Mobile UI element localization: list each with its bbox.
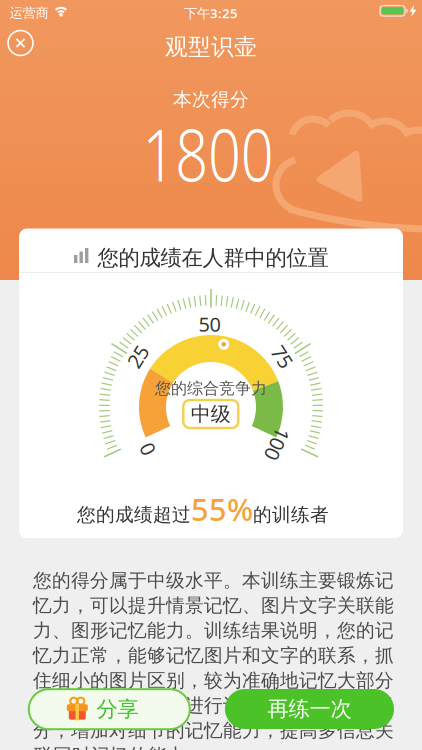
staticText: 您的成绩在人群中的位置 bbox=[97, 245, 328, 271]
staticText: 分享 bbox=[96, 696, 138, 722]
staticText: 您的综合竞争力 bbox=[155, 379, 267, 398]
staticText: 力、图形记忆能力。训练结果说明，您的记 bbox=[33, 619, 394, 642]
staticText: 住细小的图片区别，较为准确地记忆大部分 bbox=[33, 669, 394, 692]
staticText: 1800 bbox=[126, 106, 290, 201]
staticText: 您的成绩超过 bbox=[77, 503, 191, 526]
staticText: 再练一次 bbox=[267, 696, 351, 722]
staticText: 25 bbox=[127, 343, 149, 370]
staticText: 分，增加对细节的记忆能力，提高多信息关 bbox=[33, 719, 394, 742]
staticText: 观型识壶 bbox=[165, 33, 257, 61]
staticText: 75 bbox=[271, 343, 293, 370]
staticText: 联同时记忆的能力。 bbox=[34, 744, 205, 750]
staticText: 您的得分属于中级水平。本训练主要锻炼记 bbox=[33, 569, 394, 592]
staticText: 的训练者 bbox=[253, 503, 329, 526]
staticText: 忆力，可以提升情景记忆、图片文字关联能 bbox=[33, 594, 394, 617]
staticText: 55% bbox=[191, 489, 253, 529]
staticText: 本次得分 bbox=[173, 88, 249, 111]
staticText: 运营商 bbox=[9, 5, 48, 21]
staticText: 100 bbox=[261, 431, 294, 457]
button[interactable]: 关闭 bbox=[8, 30, 33, 55]
button[interactable]: 分享 bbox=[29, 689, 190, 729]
staticText: 的图片顺序。建议进行训练，巩固并提升得 bbox=[33, 694, 394, 717]
staticText: 50 bbox=[198, 311, 220, 337]
staticText: 忆力正常，能够记忆图片和文字的联系，抓 bbox=[33, 644, 394, 667]
button[interactable]: 再练一次 bbox=[225, 689, 394, 729]
staticText: 0 bbox=[142, 436, 153, 463]
staticText: 中级 bbox=[191, 402, 231, 426]
staticText: 下午3:25 bbox=[184, 4, 238, 22]
